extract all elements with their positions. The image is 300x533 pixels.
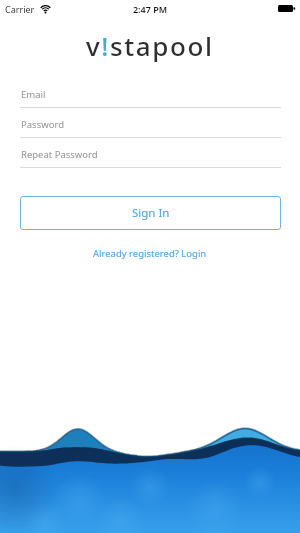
- staticText: Sign In: [132, 205, 170, 221]
- staticText: Already registered? Login: [93, 247, 207, 260]
- staticText: Password: [21, 118, 64, 131]
- button[interactable]: Email: [20, 88, 281, 108]
- staticText: Carrier: [5, 3, 35, 15]
- staticText: 2:47 PM: [0, 3, 300, 15]
- button[interactable]: Already registered? Login: [87, 245, 213, 262]
- staticText: v!stapool: [86, 28, 214, 63]
- staticText: Email: [21, 88, 46, 101]
- button[interactable]: Password: [20, 118, 281, 138]
- staticText: Repeat Password: [21, 148, 98, 161]
- button[interactable]: Repeat Password: [20, 148, 281, 168]
- button[interactable]: Sign In: [20, 196, 281, 230]
